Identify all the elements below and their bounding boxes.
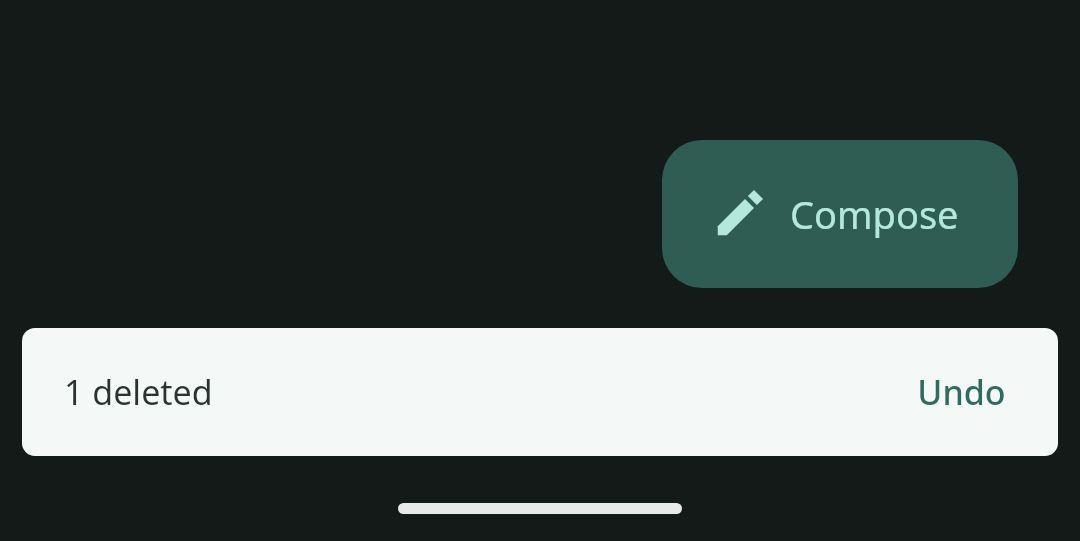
- button[interactable]: Compose: [662, 140, 1018, 288]
- staticText: 1 deleted: [64, 369, 213, 415]
- button[interactable]: Undo: [893, 355, 1030, 429]
- staticText: Compose: [790, 188, 959, 240]
- staticText: Undo: [917, 369, 1006, 415]
